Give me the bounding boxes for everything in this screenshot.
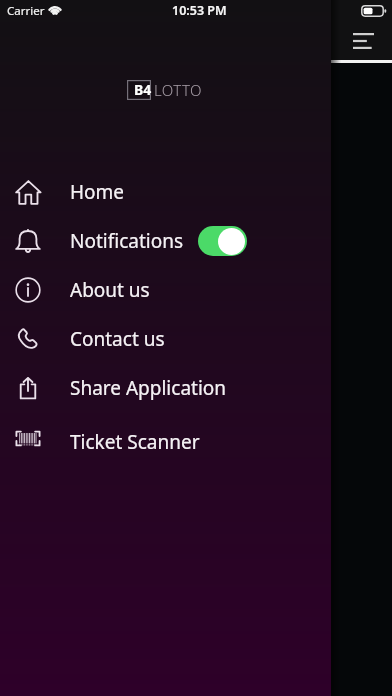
button[interactable]: Contact us [0, 315, 331, 363]
staticText: Share Application [70, 375, 227, 401]
button[interactable]: Ticket Scanner [0, 418, 331, 466]
staticText: Home [70, 179, 125, 205]
staticText: B4 [134, 80, 152, 99]
button[interactable]: Share Application [0, 364, 331, 412]
staticText: Notifications [70, 228, 184, 254]
staticText: LOTTO [154, 80, 202, 100]
staticText: 10:53 PM [172, 2, 227, 19]
button[interactable]: Open navigation menu [347, 25, 379, 57]
staticText: About us [70, 277, 150, 303]
button[interactable]: Notifications [0, 217, 331, 265]
button[interactable]: Notifications toggle [198, 226, 247, 256]
button[interactable]: About us [0, 266, 331, 314]
button[interactable]: Home [0, 168, 331, 216]
staticText: Ticket Scanner [70, 429, 200, 455]
staticText: Carrier [7, 3, 45, 19]
staticText: Contact us [70, 326, 165, 352]
